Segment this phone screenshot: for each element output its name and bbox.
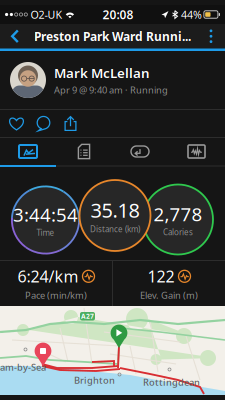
staticText: Apr 9 @ 9:40 am · Running	[54, 84, 168, 96]
staticText: 44%	[181, 7, 202, 22]
staticText: Calories	[163, 227, 193, 237]
button[interactable]: 35.18	[79, 180, 150, 251]
button[interactable]: Share	[57, 110, 84, 136]
staticText: Pace (min/km)	[25, 289, 87, 301]
button[interactable]: Comment	[30, 110, 57, 136]
staticText: 6:24/km	[17, 266, 78, 287]
staticText: Rottingdean	[143, 376, 200, 388]
button[interactable]: Map	[0, 138, 56, 165]
staticText: A27	[81, 312, 94, 321]
staticText: O2-UK	[27, 7, 62, 22]
staticText: 122	[147, 266, 174, 287]
button[interactable]: 3:44:54	[11, 185, 80, 254]
button[interactable]: Mark McLellan	[0, 51, 225, 109]
button[interactable]: Like	[3, 110, 30, 136]
staticText: 35.18	[90, 197, 139, 223]
button[interactable]: Laps	[112, 138, 168, 165]
staticText: Distance (km)	[90, 224, 140, 234]
button[interactable]: 6:24/km	[0, 261, 112, 306]
button[interactable]: Heart rate	[168, 138, 225, 165]
staticText: Time	[36, 227, 54, 238]
button[interactable]: More options	[199, 24, 223, 48]
button[interactable]: Details	[56, 138, 112, 165]
button[interactable]: 2,778	[143, 184, 213, 254]
button[interactable]: 122	[113, 261, 225, 306]
button[interactable]: Back	[2, 24, 28, 48]
staticText: am-by-Sea	[0, 361, 46, 373]
staticText: Elev. Gain (m)	[140, 289, 198, 301]
staticText: Mark McLellan	[54, 64, 150, 82]
staticText: 20:08	[102, 6, 133, 22]
staticText: Preston Park Ward Runni...	[34, 28, 191, 44]
staticText: 3:44:54	[13, 202, 78, 227]
staticText: Brighton	[74, 374, 115, 386]
staticText: 2,778	[153, 201, 202, 226]
